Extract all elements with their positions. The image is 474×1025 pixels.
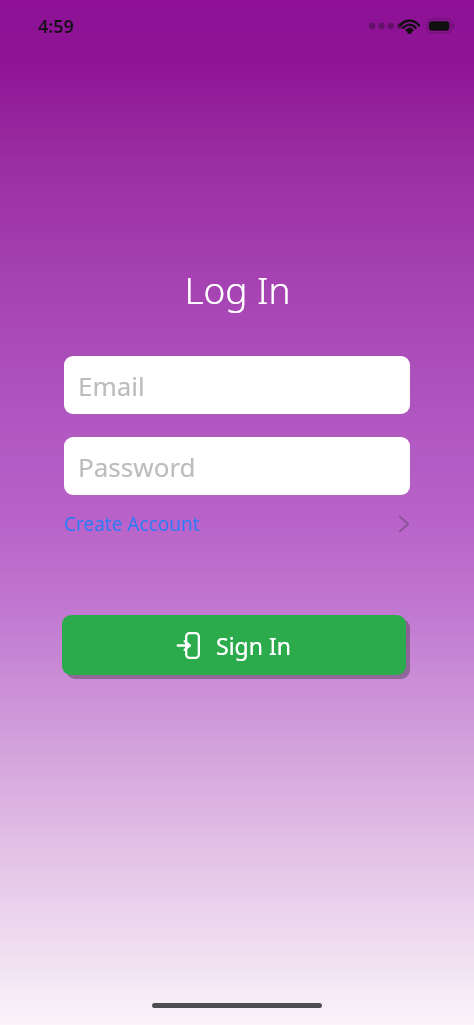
staticText: Log In bbox=[184, 264, 291, 314]
staticText: 4:59 bbox=[38, 14, 74, 39]
staticText: Password bbox=[78, 449, 196, 484]
button[interactable]: Sign In bbox=[62, 615, 406, 675]
button[interactable]: Email bbox=[64, 356, 410, 414]
staticText: Sign In bbox=[216, 630, 291, 661]
other: Create Account bbox=[398, 514, 410, 534]
button[interactable]: Password bbox=[64, 437, 410, 495]
staticText: Create Account bbox=[64, 511, 200, 537]
staticText: Email bbox=[78, 368, 145, 403]
button[interactable]: Create Account bbox=[64, 507, 410, 541]
